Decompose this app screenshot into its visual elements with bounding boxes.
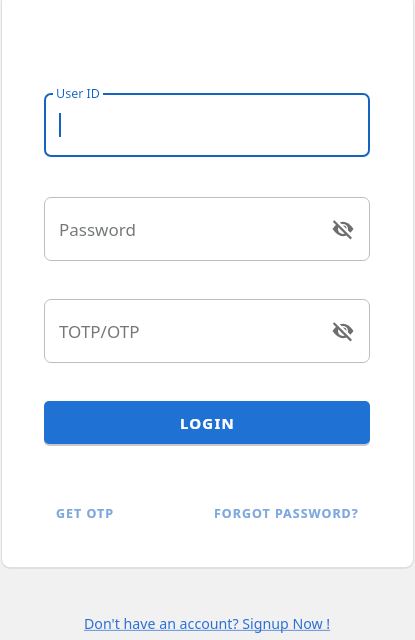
button[interactable]: LOGIN (44, 401, 370, 444)
button[interactable]: Don't have an account? Signup Now ! (84, 614, 331, 633)
staticText: Password (59, 218, 136, 241)
staticText: TOTP/OTP (59, 320, 140, 343)
button[interactable] (331, 217, 355, 241)
button[interactable] (331, 319, 355, 343)
staticText: LOGIN (180, 413, 235, 433)
staticText: User ID (56, 85, 100, 102)
button[interactable]: FORGOT PASSWORD? (214, 505, 359, 522)
staticText: GET OTP (56, 505, 115, 522)
button[interactable]: GET OTP (56, 505, 115, 522)
staticText: Don't have an account? Signup Now ! (84, 614, 331, 633)
staticText: FORGOT PASSWORD? (214, 505, 359, 522)
